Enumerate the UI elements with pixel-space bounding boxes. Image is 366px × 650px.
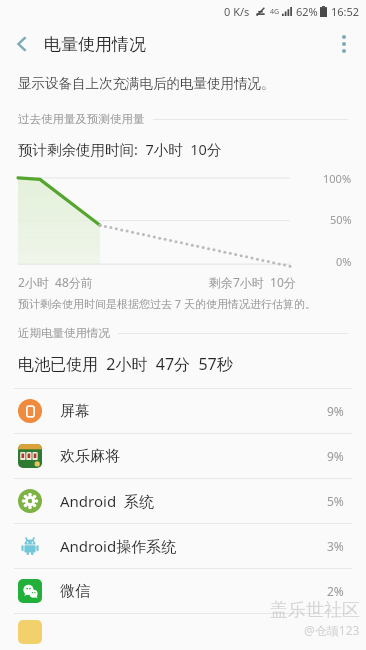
- button[interactable]: 欢乐麻将: [0, 434, 366, 478]
- staticText: 电量使用情况: [44, 34, 146, 55]
- staticText: 2小时 48分前: [18, 274, 93, 290]
- staticText: 9%: [327, 448, 344, 464]
- button[interactable]: [0, 614, 366, 650]
- staticText: 预计剩余使用时间: 7小时 10分: [18, 139, 222, 159]
- button[interactable]: Android 系统: [0, 479, 366, 523]
- button[interactable]: Back: [0, 22, 44, 66]
- staticText: 剩余7小时 10分: [209, 274, 296, 290]
- staticText: 盖乐世社区: [270, 599, 360, 622]
- staticText: Android操作系统: [60, 536, 177, 556]
- staticText: 屏幕: [60, 402, 90, 421]
- staticText: 过去使用量及预测使用量: [18, 112, 145, 126]
- staticText: 2%: [327, 583, 344, 599]
- staticText: 预计剩余使用时间是根据您过去 7 天的使用情况进行估算的。: [18, 296, 317, 311]
- staticText: Android 系统: [60, 491, 154, 511]
- staticText: 3%: [327, 538, 344, 554]
- staticText: 62%: [296, 4, 318, 19]
- staticText: 显示设备自上次充满电后的电量使用情况。: [18, 75, 275, 92]
- button[interactable]: 屏幕: [0, 389, 366, 433]
- staticText: 0 K/s: [224, 4, 250, 19]
- staticText: 微信: [60, 582, 90, 601]
- staticText: @仓颉123: [304, 622, 360, 638]
- button[interactable]: 微信: [0, 569, 366, 613]
- staticText: 4G: [270, 7, 280, 17]
- button[interactable]: Android操作系统: [0, 524, 366, 568]
- staticText: 50%: [330, 212, 352, 227]
- staticText: 5%: [327, 493, 344, 509]
- staticText: 欢乐麻将: [60, 447, 120, 466]
- staticText: 0%: [336, 254, 352, 269]
- button[interactable]: More options: [322, 22, 366, 66]
- staticText: 16:52: [331, 4, 360, 19]
- staticText: 9%: [327, 403, 344, 419]
- staticText: 100%: [323, 171, 352, 186]
- staticText: 电池已使用 2小时 47分 57秒: [18, 353, 233, 375]
- staticText: 近期电量使用情况: [18, 326, 110, 340]
